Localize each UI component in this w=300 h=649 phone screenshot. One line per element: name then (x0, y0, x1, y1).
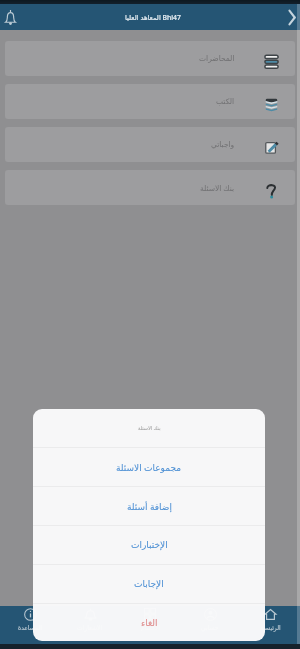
staticText: بنك الاسئلة (138, 425, 161, 432)
button[interactable]: المساعدة (0, 606, 60, 644)
staticText: واجباتي (211, 140, 235, 149)
staticText: مجموعات الاسئلة (116, 461, 182, 473)
button[interactable]: إضافة أسئلة (33, 487, 265, 525)
button[interactable]: الرئيسية (240, 606, 300, 644)
button[interactable]: الغاء (33, 604, 265, 641)
button[interactable]: بنك الاسئلة (5, 170, 295, 205)
button[interactable]: واجباتي (5, 127, 295, 162)
staticText: الغاء (141, 618, 158, 628)
button[interactable]: الاشعارات (60, 606, 120, 644)
staticText: الكتب (216, 97, 235, 106)
button[interactable]: الإختبارات (33, 526, 265, 564)
staticText: بنك الاسئلة (200, 183, 235, 193)
staticText: الإختبارات (131, 540, 168, 550)
button[interactable]: حسابي (180, 606, 240, 644)
button[interactable]: Notifications (0, 6, 21, 28)
staticText: المحاضرات (199, 54, 235, 63)
staticText: الاقسام (141, 624, 160, 631)
staticText: الإجابات (134, 579, 164, 589)
button[interactable]: Open menu (281, 6, 300, 28)
staticText: إضافة أسئلة (127, 500, 172, 512)
staticText: المساعدة (18, 624, 43, 631)
button[interactable]: الاقسام (120, 606, 180, 644)
staticText: المعاهد العليا Bhi47 (125, 13, 181, 22)
button[interactable]: الإجابات (33, 565, 265, 603)
button[interactable]: مجموعات الاسئلة (33, 448, 265, 486)
button[interactable]: الكتب (5, 84, 295, 119)
staticText: الرئيسية (260, 624, 281, 631)
button[interactable]: المحاضرات (5, 41, 295, 76)
